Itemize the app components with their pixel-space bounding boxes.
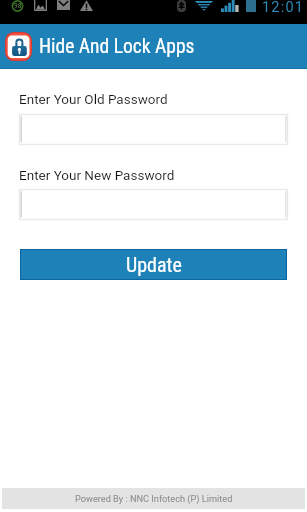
button[interactable]: Hide And Lock Apps icon [5, 32, 32, 61]
staticText: Enter Your Old Password [19, 91, 168, 107]
staticText: Hide And Lock Apps [39, 35, 195, 58]
button[interactable]: Update [20, 249, 287, 280]
staticText: Enter Your New Password [19, 167, 175, 183]
staticText: 98 [14, 1, 22, 10]
staticText: 12:01 [262, 0, 305, 16]
button[interactable]: Old password input [19, 114, 288, 145]
button[interactable]: New password input [19, 189, 288, 220]
staticText: Powered By : NNC Infotech (P) Limited [75, 493, 233, 504]
staticText: Update [126, 253, 182, 276]
